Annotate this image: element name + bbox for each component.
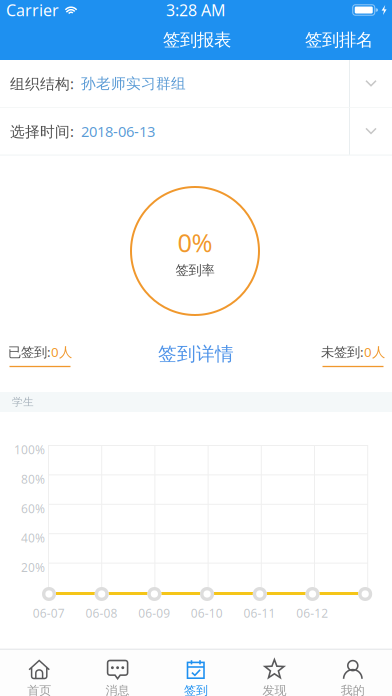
- staticText: 20%: [21, 559, 45, 575]
- staticText: 40%: [21, 530, 45, 546]
- staticText: 06-09: [138, 605, 170, 621]
- staticText: 2018-06-13: [81, 121, 155, 141]
- staticText: 签到报表: [163, 29, 231, 51]
- staticText: 06-11: [244, 605, 276, 621]
- button[interactable]: 组织结构:: [0, 60, 392, 107]
- staticText: 06-07: [33, 605, 65, 621]
- staticText: 签到排名: [305, 29, 373, 51]
- button[interactable]: 发现: [235, 645, 314, 696]
- staticText: 已签到:: [8, 343, 51, 361]
- staticText: 06-08: [85, 605, 117, 621]
- staticText: 发现: [262, 683, 286, 696]
- staticText: 签到率: [175, 262, 214, 278]
- staticText: 学生: [12, 395, 34, 408]
- staticText: Carrier: [6, 0, 59, 21]
- staticText: 组织结构:: [10, 74, 74, 93]
- staticText: 06-12: [296, 605, 328, 621]
- button[interactable]: 首页: [0, 645, 78, 696]
- staticText: 孙老师实习群组: [81, 74, 186, 92]
- button[interactable]: 已签到:: [5, 341, 75, 369]
- button[interactable]: 选择时间:: [0, 108, 392, 155]
- staticText: 消息: [106, 683, 130, 696]
- staticText: 0人: [364, 343, 385, 361]
- staticText: 80%: [21, 471, 45, 487]
- button[interactable]: 签到排名: [284, 20, 392, 60]
- button[interactable]: 未签到:: [318, 341, 388, 369]
- staticText: 签到: [184, 683, 208, 696]
- staticText: 选择时间:: [10, 121, 74, 141]
- staticText: 未签到:: [321, 343, 364, 361]
- staticText: 我的: [341, 683, 365, 696]
- staticText: 06-10: [191, 605, 223, 621]
- button[interactable]: 签到: [157, 645, 235, 696]
- button[interactable]: 签到详情: [156, 343, 236, 365]
- button[interactable]: 签到报表: [142, 20, 252, 60]
- staticText: 3:28 AM: [166, 0, 226, 21]
- staticText: 0%: [177, 225, 212, 259]
- staticText: 100%: [14, 442, 45, 458]
- staticText: 0人: [51, 343, 72, 361]
- button[interactable]: 我的: [314, 645, 392, 696]
- staticText: 签到详情: [158, 342, 234, 365]
- button[interactable]: 消息: [78, 645, 157, 696]
- staticText: 60%: [21, 500, 45, 516]
- staticText: 首页: [27, 683, 51, 696]
